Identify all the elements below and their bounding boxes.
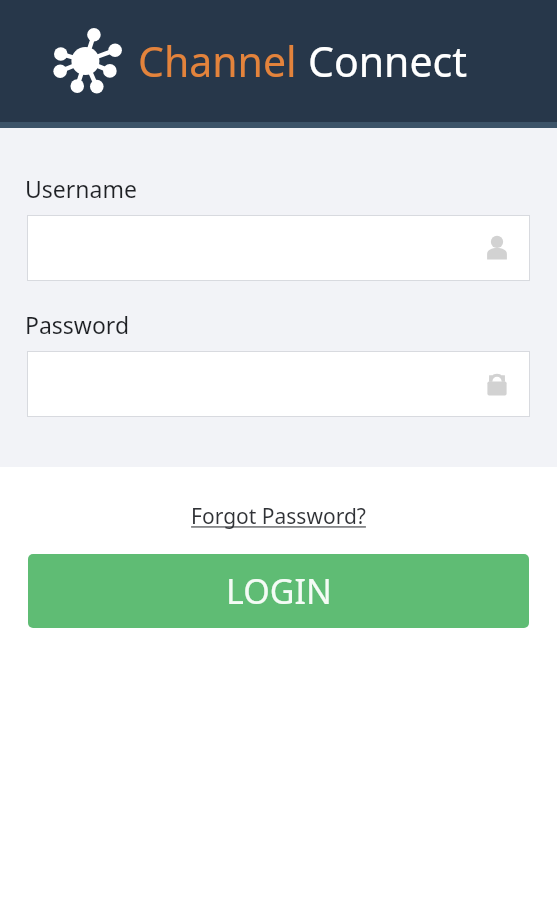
button[interactable]: Username input <box>27 215 530 281</box>
button[interactable]: Forgot Password? <box>185 500 372 533</box>
staticText: Forgot Password? <box>191 502 366 531</box>
button[interactable]: LOGIN <box>28 554 529 628</box>
staticText: Username <box>25 173 137 204</box>
staticText: Channel <box>138 33 297 89</box>
staticText: LOGIN <box>226 568 332 614</box>
button[interactable]: Password input <box>27 351 530 417</box>
staticText: Connect <box>308 33 467 89</box>
staticText: Password <box>25 309 130 340</box>
